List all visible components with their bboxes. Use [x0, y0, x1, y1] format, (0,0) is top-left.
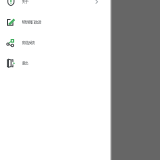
button[interactable]: 退出 — [0, 53, 110, 73]
staticText: 帮助我们改进 — [21, 20, 41, 25]
staticText: 发送反馈 — [21, 40, 35, 45]
staticText: 退出 — [21, 61, 29, 66]
button[interactable]: 帮助我们改进 — [0, 12, 110, 32]
button[interactable]: 关于 — [0, 0, 110, 12]
button[interactable]: 发送反馈 — [0, 32, 110, 53]
staticText: 关于 — [21, 0, 29, 4]
